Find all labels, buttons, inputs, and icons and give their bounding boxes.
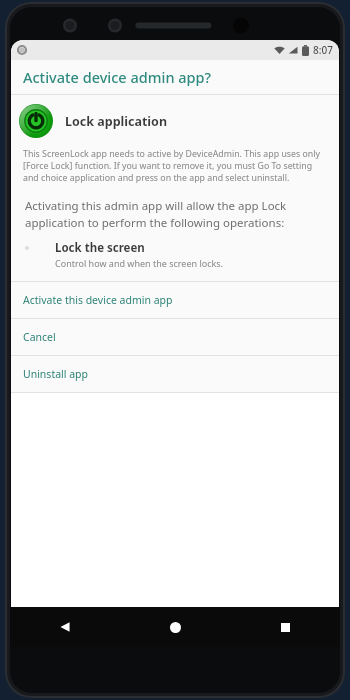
button[interactable]: Back — [10, 607, 120, 647]
button[interactable]: Cancel — [11, 319, 339, 355]
staticText: This ScreenLock app needs to active by D… — [23, 148, 327, 184]
staticText: Activating this admin app will allow the… — [25, 198, 325, 230]
button[interactable]: Recent apps — [230, 607, 340, 647]
staticText: Activate this device admin app — [23, 293, 173, 307]
button[interactable]: Home — [120, 607, 230, 647]
staticText: Uninstall app — [23, 367, 89, 381]
staticText: Lock application — [65, 113, 168, 130]
button[interactable]: Activate this device admin app — [11, 282, 339, 318]
button[interactable]: Uninstall app — [11, 356, 339, 392]
staticText: Control how and when the screen locks. — [55, 257, 223, 269]
staticText: 8:07 — [313, 43, 333, 57]
staticText: Cancel — [23, 330, 56, 344]
staticText: Activate device admin app? — [23, 67, 212, 87]
staticText: Lock the screen — [55, 240, 145, 256]
